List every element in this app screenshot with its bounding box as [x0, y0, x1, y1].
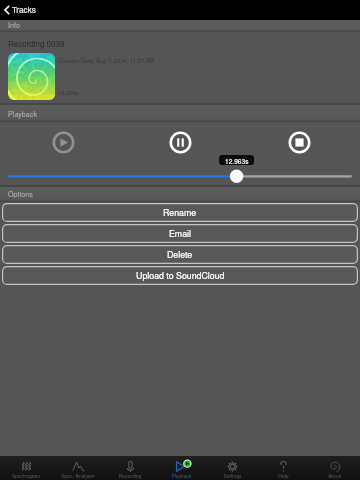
button[interactable]: Pause [169, 131, 192, 154]
button[interactable]: Email [2, 224, 358, 243]
button[interactable]: Playback [156, 456, 207, 480]
staticText: Playback [156, 472, 207, 479]
staticText: 12.963s [225, 156, 249, 165]
button[interactable]: Delete [2, 245, 358, 264]
button[interactable]: Stop [288, 131, 311, 154]
staticText: 19.284s [58, 88, 79, 96]
staticText: Options [8, 189, 33, 199]
staticText: Info [8, 20, 20, 29]
staticText: Creation Date: Aug 7, 2014, 11:57 AM [58, 56, 155, 64]
staticText: Rename [163, 206, 197, 219]
staticText: Recording 0038 [8, 38, 65, 49]
staticText: Delete [167, 248, 193, 261]
staticText: Help [258, 472, 309, 479]
button[interactable]: Spec. Analyser [52, 456, 104, 480]
button[interactable]: Help [258, 456, 309, 480]
staticText: Spec. Analyser [52, 472, 104, 479]
staticText: Settings [207, 472, 258, 479]
button[interactable]: Settings [207, 456, 258, 480]
button[interactable]: Play [52, 131, 75, 154]
staticText: Tracks [12, 4, 36, 16]
button[interactable]: Tracks [0, 0, 360, 20]
button[interactable]: Recording [104, 456, 156, 480]
button[interactable]: Rename [2, 203, 358, 222]
button[interactable]: About [309, 456, 360, 480]
staticText: Spectrogram [0, 472, 52, 479]
staticText: Playback [8, 109, 38, 119]
staticText: Recording [104, 472, 156, 479]
button[interactable]: Spectrogram [0, 456, 52, 480]
staticText: Upload to SoundCloud [136, 269, 225, 282]
staticText: About [309, 472, 360, 479]
staticText: Email [169, 227, 191, 240]
button[interactable]: Upload to SoundCloud [2, 266, 358, 285]
